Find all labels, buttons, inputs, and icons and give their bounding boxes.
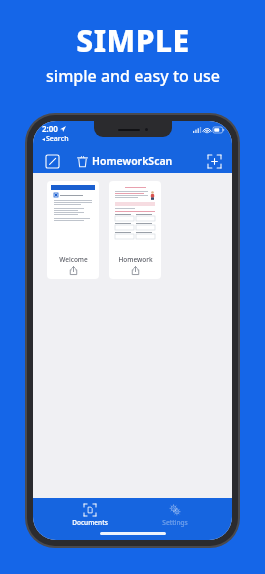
staticText: Homework [118, 255, 153, 264]
button[interactable]: Scan document [203, 150, 225, 172]
staticText: Documents [72, 518, 108, 527]
staticText: simple and easy to use [46, 65, 220, 87]
button[interactable]: Documents [62, 502, 118, 529]
button[interactable]: Welcome [47, 181, 99, 279]
staticText: Welcome [59, 255, 88, 264]
staticText: Search [46, 134, 69, 144]
staticText: HomeworkScan [92, 154, 173, 168]
staticText: SIMPLE [76, 20, 190, 61]
button[interactable]: Homework [109, 181, 161, 279]
button[interactable]: Edit [41, 150, 63, 172]
staticText: 2:00 [42, 123, 58, 134]
staticText: Settings [162, 518, 188, 527]
button[interactable]: Settings [147, 502, 203, 529]
button[interactable]: Delete [71, 150, 93, 172]
